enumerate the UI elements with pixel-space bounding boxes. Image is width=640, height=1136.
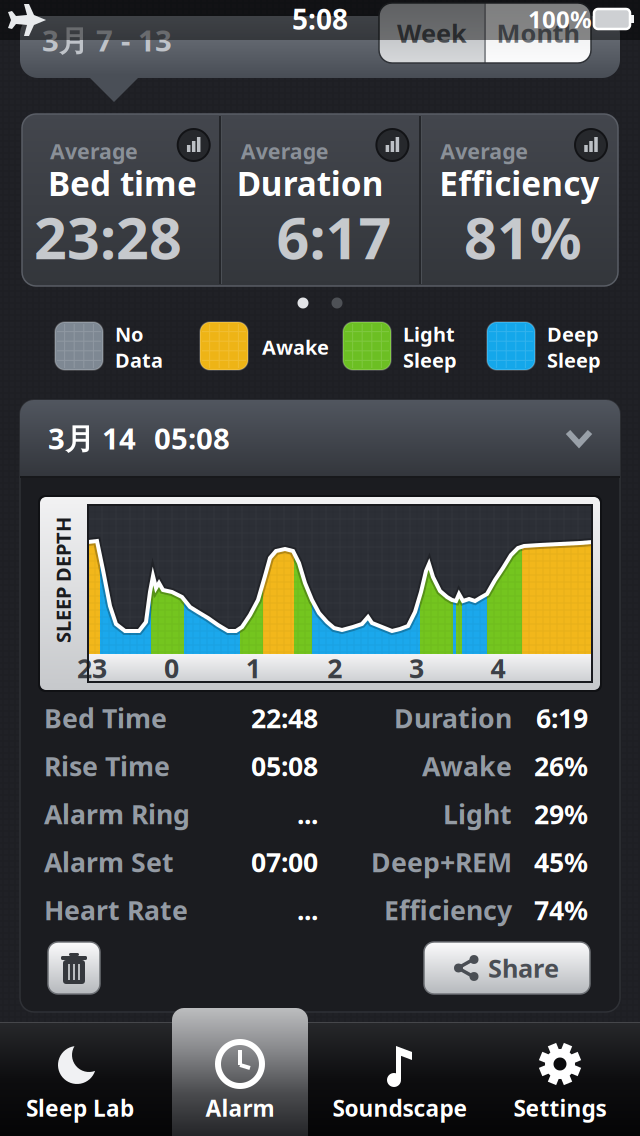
staticText: 2 [327, 650, 342, 686]
staticText: Light [443, 796, 512, 832]
staticText: Share [488, 951, 559, 985]
staticText: Data [115, 347, 163, 373]
staticText: 4 [490, 650, 505, 686]
staticText: Efficiency [384, 892, 512, 928]
button[interactable]: Delete [48, 942, 100, 994]
button[interactable]: Share [424, 942, 590, 994]
staticText: 23:28 [34, 199, 182, 275]
staticText: Average [50, 137, 138, 165]
staticText: Sleep [547, 347, 601, 373]
button[interactable]: Soundscape [325, 1020, 475, 1136]
staticText: 81% [464, 199, 582, 275]
staticText: Efficiency [439, 161, 599, 205]
button[interactable]: Week [379, 3, 485, 63]
staticText: Deep [547, 321, 599, 347]
staticText: Sleep Lab [26, 1093, 134, 1123]
staticText: 23 [77, 650, 107, 686]
button[interactable]: Collapse day details [20, 400, 620, 476]
staticText: Duration [394, 700, 512, 736]
staticText: 05:08 [251, 748, 318, 784]
staticText: 3月 7 - 13 [42, 20, 172, 59]
staticText: Duration [237, 161, 384, 205]
button[interactable]: Statistics [178, 129, 210, 161]
staticText: 22:48 [251, 700, 318, 736]
staticText: 0 [164, 650, 179, 686]
staticText: 6:19 [536, 700, 588, 736]
staticText: Bed Time [44, 700, 167, 736]
button[interactable]: Alarm [165, 1020, 315, 1136]
staticText: 07:00 [251, 844, 318, 880]
button[interactable]: Statistics [376, 129, 408, 161]
button[interactable]: Month [485, 3, 591, 63]
staticText: Sleep [403, 347, 457, 373]
staticText: 45% [534, 844, 588, 880]
staticText: Alarm [205, 1093, 274, 1123]
staticText: Awake [422, 748, 512, 784]
staticText: Rise Time [44, 748, 170, 784]
staticText: Average [440, 137, 528, 165]
staticText: Deep+REM [371, 844, 512, 880]
staticText: Month [496, 16, 579, 50]
staticText: Alarm Set [44, 844, 174, 880]
staticText: Soundscape [332, 1093, 467, 1123]
staticText: 26% [534, 748, 588, 784]
staticText: 3 [409, 650, 424, 686]
staticText: ... [297, 796, 318, 832]
staticText: Settings [513, 1093, 606, 1123]
staticText: Week [397, 16, 467, 50]
staticText: 3月 14 [48, 418, 136, 457]
staticText: No [115, 321, 144, 347]
staticText: ... [297, 892, 318, 928]
staticText: 05:08 [154, 418, 230, 457]
staticText: 29% [534, 796, 588, 832]
staticText: 5:08 [292, 0, 348, 38]
staticText: 1 [246, 650, 261, 686]
staticText: Heart Rate [44, 892, 188, 928]
staticText: Light [403, 321, 455, 347]
staticText: Alarm Ring [44, 796, 190, 832]
button[interactable]: Settings [485, 1020, 635, 1136]
staticText: 6:17 [276, 199, 391, 275]
staticText: 74% [534, 892, 588, 928]
staticText: Average [241, 137, 329, 165]
button[interactable]: Statistics [575, 129, 607, 161]
staticText: Awake [262, 334, 329, 360]
staticText: 100% [528, 3, 592, 35]
staticText: Bed time [48, 161, 197, 205]
button[interactable]: Sleep Lab [5, 1020, 155, 1136]
staticText: SLEEP DEPTH [0, 567, 126, 593]
